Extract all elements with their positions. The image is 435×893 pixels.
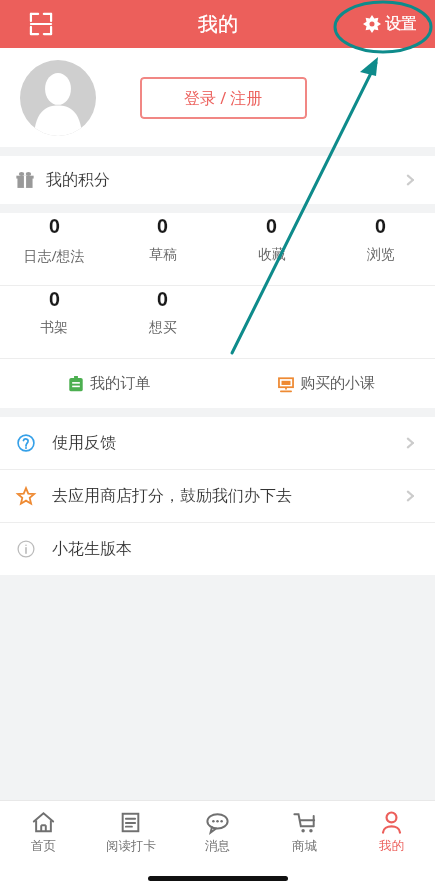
staticText: 浏览 bbox=[367, 246, 395, 264]
staticText: 使用反馈 bbox=[52, 433, 116, 453]
staticText: 登录 / 注册 bbox=[184, 87, 263, 109]
button[interactable]: Scan bbox=[24, 7, 58, 41]
button[interactable]: 阅读打卡 bbox=[87, 811, 174, 854]
staticText: 书架 bbox=[40, 319, 68, 337]
staticText: 我的 bbox=[198, 12, 238, 37]
staticText: 0 bbox=[157, 286, 168, 312]
button[interactable]: 0 bbox=[108, 213, 217, 264]
staticText: 0 bbox=[49, 286, 60, 312]
button[interactable]: 0 bbox=[0, 286, 108, 337]
staticText: 商城 bbox=[292, 838, 317, 854]
button[interactable]: 设置 bbox=[359, 8, 421, 40]
staticText: 草稿 bbox=[149, 246, 177, 264]
button[interactable]: 去应用商店打分，鼓励我们办下去 bbox=[0, 470, 435, 522]
staticText: 我的 bbox=[379, 838, 404, 854]
button[interactable]: 我的订单 bbox=[0, 374, 217, 393]
staticText: 想买 bbox=[149, 319, 177, 337]
button[interactable]: 商城 bbox=[261, 811, 348, 854]
button[interactable]: 0 bbox=[0, 213, 108, 265]
button[interactable]: 0 bbox=[217, 213, 326, 264]
button[interactable]: 0 bbox=[326, 213, 435, 264]
staticText: 0 bbox=[49, 213, 60, 239]
staticText: 我的订单 bbox=[90, 374, 150, 393]
staticText: 0 bbox=[157, 213, 168, 239]
button[interactable]: 小花生版本 bbox=[0, 523, 435, 575]
button[interactable]: 消息 bbox=[174, 811, 261, 854]
staticText: 日志/想法 bbox=[23, 246, 85, 265]
staticText: 我的积分 bbox=[46, 170, 110, 190]
button[interactable]: 使用反馈 bbox=[0, 417, 435, 469]
staticText: 0 bbox=[375, 213, 386, 239]
button[interactable]: 我的积分 bbox=[0, 156, 435, 204]
staticText: 首页 bbox=[31, 838, 56, 854]
staticText: 消息 bbox=[205, 838, 230, 854]
button[interactable]: 0 bbox=[108, 286, 217, 337]
button[interactable]: Avatar bbox=[20, 60, 96, 136]
button[interactable]: 购买的小课 bbox=[217, 374, 435, 393]
button[interactable]: 登录 / 注册 bbox=[140, 77, 307, 119]
staticText: 阅读打卡 bbox=[106, 838, 156, 854]
staticText: 0 bbox=[266, 213, 277, 239]
button[interactable]: 首页 bbox=[0, 811, 87, 854]
staticText: 小花生版本 bbox=[52, 539, 132, 559]
staticText: 购买的小课 bbox=[300, 374, 375, 393]
staticText: 收藏 bbox=[258, 246, 286, 264]
staticText: 设置 bbox=[385, 14, 417, 34]
staticText: 去应用商店打分，鼓励我们办下去 bbox=[52, 486, 292, 506]
button[interactable]: 我的 bbox=[348, 811, 435, 854]
